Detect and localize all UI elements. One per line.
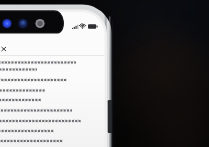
button[interactable]: Smartphone product photo close-up bbox=[0, 0, 209, 147]
